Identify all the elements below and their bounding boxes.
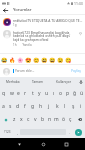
button[interactable]: Shift bbox=[0, 113, 11, 126]
button[interactable]: b bbox=[39, 113, 46, 126]
button[interactable]: t bbox=[29, 87, 36, 100]
button[interactable]: Emoji bbox=[17, 56, 24, 63]
staticText: ş bbox=[72, 103, 75, 110]
staticText: s bbox=[9, 103, 12, 110]
staticText: w bbox=[10, 90, 14, 97]
button[interactable]: Emoji bbox=[25, 56, 32, 63]
button[interactable]: Paylaş bbox=[70, 67, 82, 75]
button[interactable]: , bbox=[14, 126, 20, 138]
staticText: b bbox=[41, 116, 45, 123]
staticText: 11:33 bbox=[74, 1, 83, 6]
staticText: r bbox=[24, 90, 27, 97]
staticText: m bbox=[54, 116, 59, 123]
button[interactable]: Back bbox=[0, 6, 10, 14]
button[interactable]: Emoji bbox=[1, 56, 8, 63]
button[interactable]: ö bbox=[60, 113, 67, 126]
button[interactable]: Voice input bbox=[77, 77, 85, 87]
staticText: p bbox=[66, 90, 70, 97]
button[interactable]: ç bbox=[67, 113, 74, 126]
staticText: n bbox=[48, 116, 52, 123]
staticText: Paylaş bbox=[71, 69, 81, 73]
staticText: , bbox=[17, 130, 18, 135]
button[interactable]: Emoji bbox=[57, 56, 64, 63]
staticText: redfutbolTV ETIQUETA A TU AMIGO QUE TE H… bbox=[13, 18, 83, 22]
staticText: ?123 bbox=[4, 130, 11, 134]
staticText: 😊 bbox=[33, 57, 40, 63]
button[interactable]: redfutbolTV ETIQUETA A TU AMIGO QUE TE H… bbox=[0, 18, 85, 27]
button[interactable]: l bbox=[61, 100, 69, 113]
staticText: u bbox=[45, 90, 49, 97]
staticText: ı bbox=[53, 90, 55, 97]
button[interactable]: p bbox=[64, 87, 71, 100]
button[interactable]: n bbox=[46, 113, 53, 126]
staticText: 😍 bbox=[25, 57, 32, 63]
button[interactable]: hatice6723 Bmwlhasandjsj bagjkhda, ksdnk… bbox=[0, 30, 85, 47]
button[interactable]: x bbox=[18, 113, 25, 126]
button[interactable]: Emoji bbox=[9, 56, 16, 63]
button[interactable]: ?123 bbox=[0, 126, 14, 138]
button[interactable]: k bbox=[53, 100, 61, 113]
button[interactable]: o bbox=[57, 87, 64, 100]
button[interactable]: Delete bbox=[74, 113, 85, 126]
staticText: 😃 bbox=[41, 57, 48, 63]
staticText: 😄 bbox=[49, 57, 56, 63]
button[interactable]: j bbox=[45, 100, 53, 113]
staticText: f bbox=[24, 103, 26, 110]
button[interactable]: f bbox=[21, 100, 29, 113]
button[interactable]: e bbox=[15, 87, 22, 100]
staticText: 🔥 bbox=[9, 57, 16, 63]
button[interactable]: d bbox=[14, 100, 21, 113]
button[interactable]: y bbox=[36, 87, 43, 100]
button[interactable]: v bbox=[32, 113, 39, 126]
button[interactable]: Send bbox=[75, 129, 82, 136]
staticText: ö bbox=[62, 116, 66, 123]
button[interactable]: Emoji bbox=[49, 56, 56, 63]
button[interactable]: z bbox=[11, 113, 18, 126]
button[interactable]: Tamam bbox=[25, 77, 51, 87]
staticText: x bbox=[20, 116, 23, 123]
button[interactable]: ı bbox=[50, 87, 57, 100]
button[interactable]: m bbox=[53, 113, 60, 126]
button[interactable]: r bbox=[22, 87, 29, 100]
staticText: 1g bbox=[13, 23, 17, 27]
button[interactable]: Home bbox=[38, 139, 48, 149]
button[interactable]: Emoji bbox=[65, 56, 72, 63]
button[interactable]: Back bbox=[14, 139, 24, 149]
button[interactable]: Like bbox=[77, 30, 83, 36]
staticText: 😉 bbox=[57, 57, 64, 63]
staticText: . bbox=[69, 130, 70, 135]
button[interactable]: i bbox=[77, 100, 85, 113]
button[interactable]: h bbox=[37, 100, 45, 113]
staticText: g bbox=[31, 103, 35, 110]
staticText: Kullanıyor bbox=[56, 80, 72, 84]
staticText: Merhaba bbox=[6, 80, 20, 84]
staticText: e bbox=[17, 90, 20, 97]
button[interactable]: g bbox=[29, 100, 37, 113]
staticText: Yorum ekle... bbox=[15, 69, 35, 73]
button[interactable]: q bbox=[0, 87, 8, 100]
button[interactable]: s bbox=[7, 100, 14, 113]
staticText: 😂 bbox=[1, 57, 8, 63]
button[interactable]: w bbox=[8, 87, 15, 100]
button[interactable]: c bbox=[25, 113, 32, 126]
button[interactable]: ş bbox=[69, 100, 77, 113]
button[interactable]: Merhaba bbox=[0, 77, 25, 87]
staticText: h bbox=[39, 103, 43, 110]
staticText: q bbox=[2, 90, 6, 97]
button[interactable]: Emoji bbox=[41, 56, 48, 63]
button[interactable]: a bbox=[0, 100, 7, 113]
button[interactable]: Kullanıyor bbox=[51, 77, 77, 87]
button[interactable]: ü bbox=[78, 87, 85, 100]
button[interactable]: u bbox=[43, 87, 50, 100]
staticText: v bbox=[34, 116, 37, 123]
button[interactable]: Emoji bbox=[33, 56, 40, 63]
staticText: 🌸 bbox=[17, 57, 24, 63]
staticText: hatice6723 Bmwlhasandjsj bagjkhda, ksdnk… bbox=[13, 30, 76, 42]
staticText: i bbox=[80, 103, 82, 110]
staticText: k bbox=[56, 103, 59, 110]
button[interactable]: Recent apps bbox=[61, 139, 71, 149]
button[interactable]: ğ bbox=[71, 87, 78, 100]
staticText: l bbox=[64, 103, 66, 110]
